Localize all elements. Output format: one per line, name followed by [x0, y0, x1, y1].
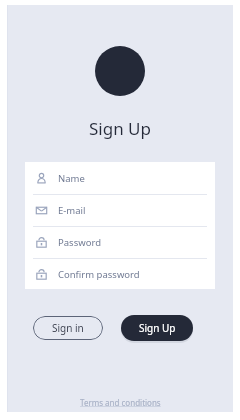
button[interactable]: Confirm password	[25, 259, 215, 289]
staticText: Terms and conditions	[80, 397, 161, 408]
staticText: Sign in	[52, 321, 84, 335]
staticText: Sign Up	[139, 321, 176, 335]
button[interactable]: Password	[25, 227, 215, 258]
button[interactable]: Sign in	[33, 316, 103, 340]
staticText: E-mail	[58, 204, 86, 217]
button[interactable]: Terms and conditions	[76, 395, 165, 410]
other: Profile avatar	[95, 46, 145, 96]
button[interactable]: E-mail	[25, 195, 215, 226]
staticText: Password	[58, 236, 101, 249]
staticText: Name	[58, 172, 85, 185]
staticText: Sign Up	[89, 117, 151, 140]
staticText: Confirm password	[58, 268, 140, 281]
button[interactable]: Sign Up	[121, 315, 193, 341]
button[interactable]: Name	[25, 162, 215, 194]
